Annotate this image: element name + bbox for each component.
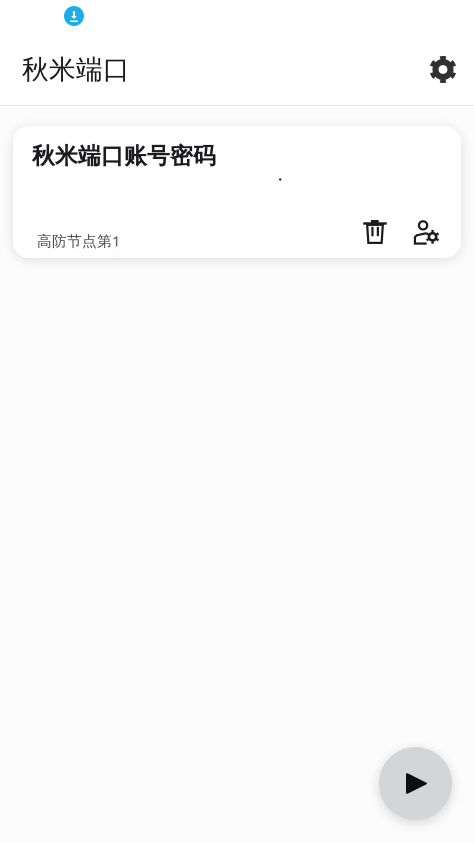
staticText: 秋米端口 bbox=[22, 53, 130, 86]
button[interactable]: Delete bbox=[353, 210, 397, 254]
button[interactable]: Settings bbox=[421, 47, 465, 91]
button[interactable]: Manage account bbox=[404, 210, 448, 254]
button[interactable]: 秋米端口账号密码 bbox=[13, 126, 461, 258]
staticText: 秋米端口账号密码 bbox=[32, 142, 216, 170]
button[interactable]: Start bbox=[379, 747, 452, 820]
staticText: 高防节点第1 bbox=[37, 231, 120, 251]
